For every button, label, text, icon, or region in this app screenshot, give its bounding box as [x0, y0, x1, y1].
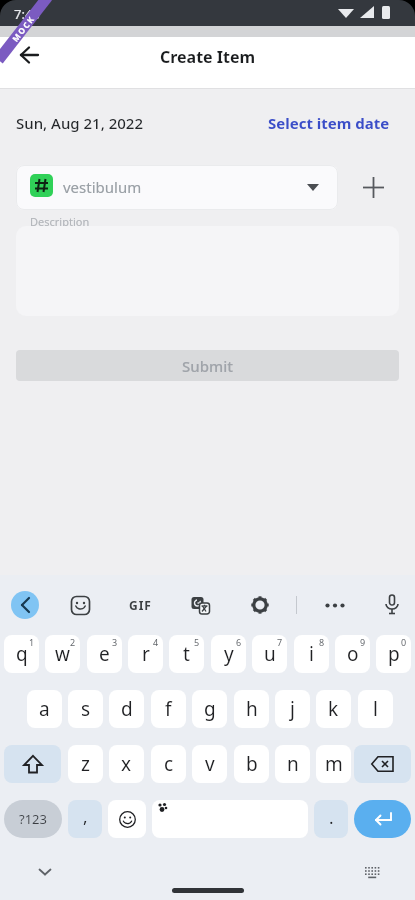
button[interactable]: [246, 591, 274, 619]
button[interactable]: .: [314, 800, 348, 838]
staticText: 6: [236, 636, 242, 648]
button[interactable]: [358, 863, 386, 881]
staticText: z: [81, 751, 90, 777]
button[interactable]: [152, 800, 308, 838]
staticText: x: [121, 751, 132, 777]
staticText: 3: [112, 636, 118, 648]
button[interactable]: a: [27, 690, 62, 728]
button[interactable]: Submit: [16, 350, 399, 381]
button[interactable]: [354, 745, 411, 783]
button[interactable]: [354, 800, 411, 838]
button[interactable]: j: [275, 690, 310, 728]
button[interactable]: [31, 863, 59, 881]
button[interactable]: c: [151, 745, 186, 783]
staticText: 7:46: [14, 5, 40, 23]
staticText: Create Item: [0, 46, 415, 68]
staticText: c: [164, 751, 174, 777]
staticText: 4: [153, 636, 159, 648]
button[interactable]: [66, 591, 94, 619]
staticText: a: [39, 696, 50, 722]
staticText: q: [16, 641, 28, 667]
staticText: 7: [277, 636, 283, 648]
button[interactable]: [378, 591, 406, 619]
staticText: s: [81, 696, 91, 722]
staticText: 8: [319, 636, 325, 648]
button[interactable]: x: [109, 745, 144, 783]
button[interactable]: n: [275, 745, 310, 783]
button[interactable]: v: [192, 745, 227, 783]
button[interactable]: s: [68, 690, 103, 728]
staticText: 2: [70, 636, 76, 648]
button[interactable]: [318, 591, 352, 619]
staticText: MOCK: [9, 12, 37, 44]
staticText: l: [373, 696, 378, 722]
staticText: i: [309, 641, 314, 667]
staticText: ?123: [19, 810, 47, 828]
button[interactable]: r: [128, 635, 163, 673]
staticText: w: [55, 641, 70, 667]
button[interactable]: z: [68, 745, 103, 783]
button[interactable]: l: [358, 690, 393, 728]
button[interactable]: [11, 591, 39, 619]
button[interactable]: [4, 745, 61, 783]
button[interactable]: i: [294, 635, 329, 673]
button[interactable]: o: [335, 635, 370, 673]
button[interactable]: [186, 591, 214, 619]
staticText: h: [246, 696, 258, 722]
staticText: e: [99, 641, 110, 667]
button[interactable]: u: [252, 635, 287, 673]
staticText: r: [142, 641, 150, 667]
button[interactable]: t: [169, 635, 204, 673]
button[interactable]: p: [376, 635, 411, 673]
staticText: o: [347, 641, 359, 667]
staticText: t: [183, 641, 190, 667]
button[interactable]: GIF: [120, 591, 160, 619]
staticText: m: [325, 751, 343, 777]
staticText: g: [204, 696, 216, 722]
staticText: k: [328, 696, 339, 722]
button[interactable]: Select item date: [268, 113, 390, 133]
staticText: 5: [194, 636, 200, 648]
staticText: y: [224, 641, 234, 667]
button[interactable]: vestibulum: [16, 165, 338, 210]
button[interactable]: [354, 168, 392, 206]
staticText: b: [246, 751, 258, 777]
staticText: f: [165, 696, 172, 722]
button[interactable]: f: [151, 690, 186, 728]
staticText: GIF: [129, 597, 152, 613]
staticText: n: [287, 751, 299, 777]
button[interactable]: m: [316, 745, 351, 783]
staticText: ,: [83, 805, 88, 828]
button[interactable]: ,: [68, 800, 102, 838]
staticText: Submit: [182, 356, 233, 376]
button[interactable]: h: [234, 690, 269, 728]
staticText: 9: [360, 636, 366, 648]
button[interactable]: ?123: [4, 800, 62, 838]
button[interactable]: b: [234, 745, 269, 783]
staticText: v: [205, 751, 215, 777]
staticText: d: [121, 696, 133, 722]
button[interactable]: d: [109, 690, 144, 728]
staticText: .: [329, 806, 334, 829]
button[interactable]: e: [87, 635, 122, 673]
staticText: j: [290, 696, 295, 722]
staticText: u: [264, 641, 276, 667]
staticText: p: [388, 641, 400, 667]
button[interactable]: y: [211, 635, 246, 673]
staticText: 1: [29, 636, 35, 648]
button[interactable]: [11, 37, 47, 73]
button[interactable]: k: [316, 690, 351, 728]
button[interactable]: [108, 800, 146, 838]
button[interactable]: w: [45, 635, 80, 673]
staticText: vestibulum: [63, 177, 142, 197]
button[interactable]: g: [192, 690, 227, 728]
button[interactable]: q: [4, 635, 39, 673]
staticText: Description: [30, 214, 90, 229]
button[interactable]: Sun, Aug 21, 2022: [16, 113, 143, 133]
staticText: 0: [401, 636, 407, 648]
